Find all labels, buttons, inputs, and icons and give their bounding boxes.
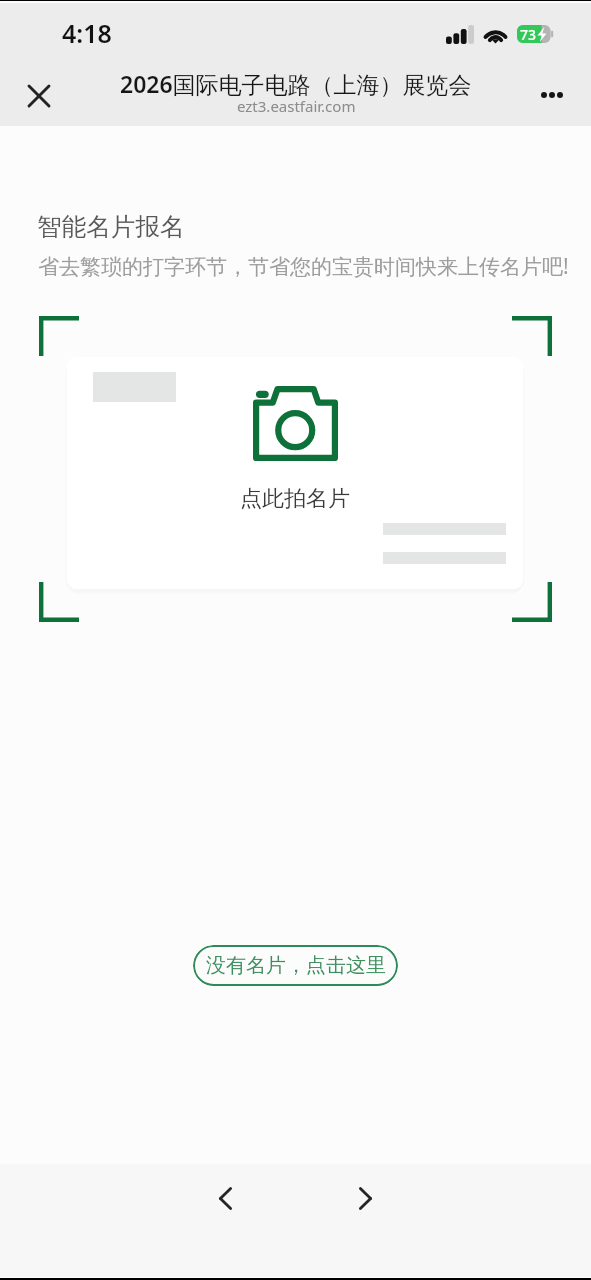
- staticText: ezt3.eastfair.com: [237, 96, 356, 116]
- staticText: 4:18: [62, 16, 112, 50]
- staticText: 智能名片报名: [37, 211, 185, 242]
- staticText: 没有名片，点击这里: [206, 953, 386, 978]
- staticText: 省去繁琐的打字环节，节省您的宝贵时间快来上传名片吧!: [38, 252, 569, 281]
- staticText: 73: [520, 25, 537, 43]
- staticText: 点此拍名片: [240, 485, 350, 513]
- staticText: 2026国际电子电路（上海）展览会: [120, 68, 472, 99]
- button[interactable]: Forward: [337, 1170, 393, 1226]
- button[interactable]: 点此拍名片: [67, 357, 523, 589]
- button[interactable]: More options: [529, 72, 575, 118]
- button[interactable]: Close: [16, 72, 61, 117]
- button[interactable]: 没有名片，点击这里: [193, 945, 398, 986]
- button[interactable]: Back: [197, 1170, 253, 1226]
